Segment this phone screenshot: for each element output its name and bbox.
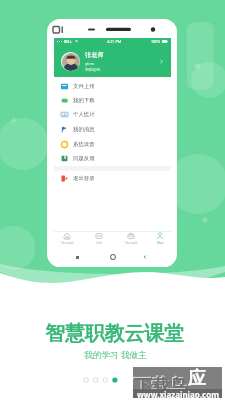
staticText: 智慧职教云课堂 — [45, 321, 184, 346]
button[interactable]: 消息 — [87, 232, 111, 245]
staticText: www.xiazainiao.com — [137, 389, 219, 398]
other: 消息 — [95, 232, 103, 240]
other: 我的 — [156, 232, 164, 240]
staticText: 我的课堂 — [125, 241, 138, 245]
staticText: 学院名称 — [85, 67, 101, 72]
button[interactable]: 个人统计 — [54, 107, 171, 121]
staticText: 文件上传 — [73, 83, 95, 90]
button[interactable]: 我的下载 — [54, 93, 171, 107]
staticText: 系统设置 — [73, 141, 95, 148]
staticText: 我的下载 — [73, 97, 95, 104]
staticText: 4:21 PM — [107, 39, 122, 44]
staticText: 我的学习 我做主 — [84, 349, 147, 361]
staticText: 我的消息 — [73, 126, 95, 133]
button[interactable]: 我的课堂 — [119, 232, 143, 245]
staticText: 下载鸟 — [134, 375, 188, 398]
staticText: 应用 — [188, 367, 223, 398]
button[interactable]: 问题反馈 — [54, 151, 171, 165]
staticText: 张老师 — [85, 51, 104, 59]
button[interactable]: 我的课程 — [55, 232, 79, 245]
button[interactable]: 文件上传 — [54, 79, 171, 93]
staticText: 消息 — [96, 241, 103, 245]
staticText: 个人统计 — [73, 111, 95, 118]
button[interactable]: 我的消息 — [54, 122, 171, 136]
button[interactable]: 退出登录 — [54, 171, 171, 185]
other: 我的课堂 — [127, 232, 135, 240]
button[interactable]: Home — [110, 254, 116, 260]
staticText: BELL — [64, 39, 73, 44]
button[interactable]: 张老师 — [54, 45, 171, 77]
staticText: 下载鸟 — [133, 374, 187, 397]
other: 我的课程 — [63, 232, 71, 240]
staticText: 我的 — [157, 241, 164, 245]
staticText: gtvm — [85, 61, 95, 66]
staticText: 我的课程 — [61, 241, 74, 245]
button[interactable]: Back — [142, 254, 148, 260]
button[interactable]: 我的 — [148, 232, 172, 245]
staticText: 退出登录 — [73, 175, 95, 182]
button[interactable]: 系统设置 — [54, 137, 171, 151]
staticText: 100% — [151, 39, 161, 44]
staticText: 问题反馈 — [73, 155, 95, 162]
